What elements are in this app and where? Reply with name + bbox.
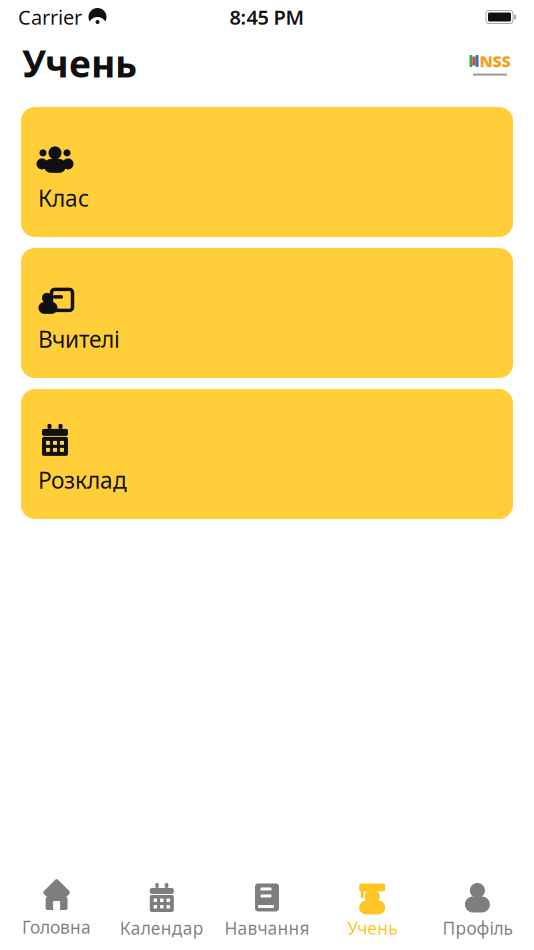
staticText: 8:45 PM	[229, 4, 304, 30]
button[interactable]: Вчителі	[21, 248, 513, 378]
staticText: NSS	[479, 50, 510, 72]
staticText: Carrier	[18, 4, 82, 30]
button[interactable]: Розклад	[21, 389, 513, 519]
staticText: Розклад	[38, 465, 127, 495]
button[interactable]: Навчання	[214, 876, 320, 945]
staticText: Учень	[22, 38, 137, 88]
button[interactable]: NSS school logo	[468, 50, 512, 76]
staticText: Учень	[347, 916, 397, 939]
staticText: Клас	[38, 183, 89, 213]
staticText: Календар	[120, 916, 204, 939]
staticText: Вчителі	[38, 324, 120, 354]
staticText: Навчання	[224, 916, 309, 939]
button[interactable]: Профіль	[425, 876, 530, 945]
staticText: Головна	[22, 915, 91, 938]
button[interactable]: Головна	[4, 877, 109, 944]
staticText: Профіль	[442, 916, 512, 939]
button[interactable]: Календар	[109, 876, 214, 945]
button[interactable]: Учень	[320, 876, 425, 945]
button[interactable]: Клас	[21, 107, 513, 237]
